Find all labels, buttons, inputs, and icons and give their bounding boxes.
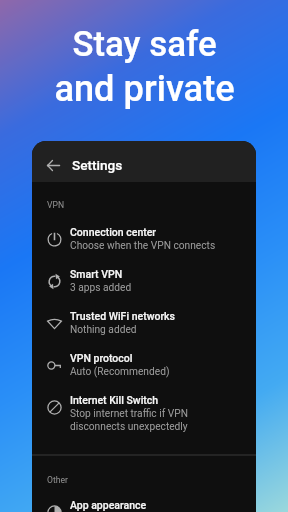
staticText: Other <box>47 475 68 485</box>
staticText: Connection center <box>70 226 157 238</box>
button[interactable]: Back <box>39 151 68 180</box>
staticText: Stay safe <box>72 24 217 65</box>
staticText: Nothing added <box>70 324 137 336</box>
staticText: Trusted WiFi networks <box>70 310 176 322</box>
staticText: 3 apps added <box>70 282 132 294</box>
staticText: Choose when the VPN connects <box>70 240 216 252</box>
staticText: VPN <box>47 200 65 210</box>
button[interactable]: Trusted WiFi networks <box>32 308 256 350</box>
staticText: Stop internet traffic if VPN disconnects… <box>70 408 188 432</box>
staticText: Internet Kill Switch <box>70 394 159 406</box>
button[interactable]: Smart VPN <box>32 266 256 308</box>
staticText: Settings <box>72 157 123 173</box>
staticText: App appearance <box>70 499 147 511</box>
button[interactable]: App appearance <box>32 497 256 512</box>
staticText: Smart VPN <box>70 268 123 280</box>
button[interactable]: VPN protocol <box>32 350 256 392</box>
staticText: Auto (Recommended) <box>70 366 170 378</box>
button[interactable]: Connection center <box>32 224 256 266</box>
button[interactable]: Internet Kill Switch <box>32 392 256 454</box>
staticText: VPN protocol <box>70 352 133 364</box>
staticText: and private <box>54 67 235 109</box>
